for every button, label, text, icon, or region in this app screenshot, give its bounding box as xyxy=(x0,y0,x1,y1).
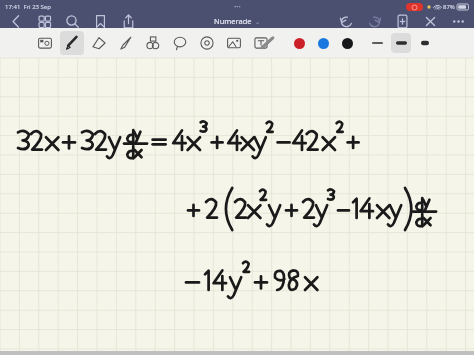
button[interactable]: Colour xyxy=(313,33,333,53)
button[interactable]: Stroke width xyxy=(415,33,435,53)
button[interactable]: Share xyxy=(114,13,142,28)
button[interactable]: Pen xyxy=(60,31,84,55)
staticText: ••• xyxy=(234,3,241,11)
button[interactable]: Thumbnails xyxy=(30,13,58,28)
staticText: ⌄ xyxy=(255,18,261,25)
button[interactable]: Scan xyxy=(33,31,57,55)
staticText: 87% xyxy=(443,3,455,11)
button[interactable]: Highlighter xyxy=(114,31,138,55)
button[interactable]: Search xyxy=(58,13,86,28)
button[interactable]: Bookmark xyxy=(86,13,114,28)
button[interactable]: More options xyxy=(444,13,472,28)
staticText: 17:41 Fri 23 Sep xyxy=(5,3,51,11)
button[interactable]: Stroke width xyxy=(367,33,387,53)
button[interactable]: Text box xyxy=(249,31,273,55)
button[interactable]: Back xyxy=(2,13,30,28)
button[interactable]: Colour xyxy=(289,33,309,53)
button[interactable]: Ruler xyxy=(256,31,280,55)
button[interactable]: Stamp xyxy=(195,31,219,55)
button[interactable]: Add page xyxy=(388,13,416,28)
button[interactable]: Undo xyxy=(332,13,360,28)
button[interactable]: Eraser xyxy=(87,31,111,55)
button[interactable]: Close xyxy=(416,13,444,28)
button[interactable]: Numerade xyxy=(214,16,261,26)
button[interactable]: Redo xyxy=(360,13,388,28)
button[interactable]: Insert image xyxy=(222,31,246,55)
button[interactable]: Lasso xyxy=(168,31,192,55)
button[interactable]: Shapes xyxy=(141,31,165,55)
staticText: Numerade xyxy=(214,16,252,26)
button[interactable]: Stroke width xyxy=(391,33,411,53)
button[interactable]: Colour xyxy=(337,33,357,53)
